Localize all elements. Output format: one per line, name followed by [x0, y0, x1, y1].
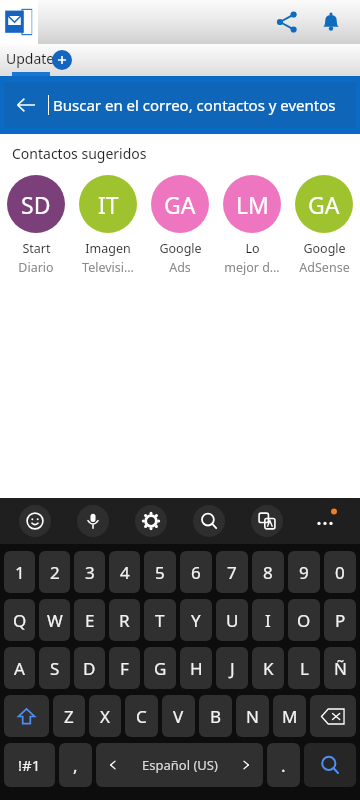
button[interactable]: B	[199, 695, 232, 737]
button[interactable]: Voice input	[64, 498, 122, 544]
button[interactable]: R	[109, 599, 140, 641]
button[interactable]: New	[52, 50, 72, 70]
button[interactable]: IT	[72, 175, 144, 276]
button[interactable]: N	[236, 695, 269, 737]
button[interactable]: O	[288, 599, 320, 641]
staticText: 6	[191, 561, 201, 584]
staticText: Google	[303, 240, 346, 257]
button[interactable]: GA	[288, 175, 360, 276]
staticText: E	[85, 609, 95, 632]
button[interactable]: Backspace	[310, 695, 356, 737]
button[interactable]: Emoji	[6, 498, 64, 544]
button[interactable]: K	[252, 647, 284, 689]
staticText: J	[230, 657, 235, 680]
button[interactable]: Share	[268, 3, 306, 41]
button[interactable]: 7	[216, 551, 248, 593]
staticText: Y	[191, 609, 201, 632]
button[interactable]: Outlook	[0, 0, 38, 44]
button[interactable]: V	[162, 695, 195, 737]
staticText: 8	[263, 561, 273, 584]
button[interactable]: W	[39, 599, 70, 641]
button[interactable]: Notifications	[312, 3, 350, 41]
staticText: SD	[21, 189, 51, 220]
button[interactable]: 1	[4, 551, 35, 593]
button[interactable]: M	[273, 695, 306, 737]
staticText: A	[14, 657, 25, 680]
staticText: V	[173, 705, 184, 728]
button[interactable]: SD	[0, 175, 72, 276]
staticText: C	[136, 705, 147, 728]
staticText: Televisi…	[82, 259, 134, 276]
button[interactable]: Search	[304, 743, 356, 787]
button[interactable]: Back	[4, 83, 48, 127]
staticText: 1	[15, 561, 25, 584]
staticText: L	[300, 657, 309, 680]
staticText: G	[154, 657, 167, 680]
staticText: 3	[85, 561, 95, 584]
staticText: K	[263, 657, 274, 680]
button[interactable]: 6	[180, 551, 212, 593]
button[interactable]: Español (US)	[96, 743, 263, 787]
staticText: R	[119, 609, 130, 632]
staticText: M	[282, 705, 298, 728]
button[interactable]: 9	[288, 551, 320, 593]
button[interactable]: I	[252, 599, 284, 641]
button[interactable]: Back	[4, 82, 356, 128]
staticText: Q	[13, 609, 27, 632]
staticText: Diario	[18, 259, 54, 276]
button[interactable]: J	[216, 647, 248, 689]
staticText: Update	[6, 49, 55, 68]
button[interactable]: Ñ	[324, 647, 356, 689]
staticText: LM	[236, 189, 269, 220]
staticText: .	[281, 754, 286, 777]
button[interactable]: Q	[4, 599, 35, 641]
staticText: F	[120, 657, 129, 680]
button[interactable]: T	[144, 599, 176, 641]
button[interactable]: F	[109, 647, 140, 689]
button[interactable]: 8	[252, 551, 284, 593]
staticText: O	[297, 609, 311, 632]
button[interactable]: P	[324, 599, 356, 641]
button[interactable]: E	[74, 599, 105, 641]
button[interactable]: G	[144, 647, 176, 689]
staticText: 0	[335, 561, 345, 584]
button[interactable]: 2	[39, 551, 70, 593]
button[interactable]: 3	[74, 551, 105, 593]
staticText: N	[246, 705, 259, 728]
button[interactable]: 0	[324, 551, 356, 593]
staticText: Ñ	[334, 657, 347, 680]
button[interactable]: ,	[59, 743, 92, 787]
button[interactable]: U	[216, 599, 248, 641]
button[interactable]: L	[288, 647, 320, 689]
staticText: mejor d…	[224, 259, 280, 276]
button[interactable]: GA	[144, 175, 216, 276]
button[interactable]: Y	[180, 599, 212, 641]
staticText: IT	[98, 189, 119, 220]
button[interactable]: Shift	[4, 695, 49, 737]
button[interactable]: C	[125, 695, 158, 737]
staticText: !#1	[18, 755, 41, 775]
staticText: Google	[159, 240, 202, 257]
button[interactable]: Settings	[122, 498, 180, 544]
staticText: GA	[164, 189, 196, 220]
button[interactable]: A	[4, 647, 35, 689]
button[interactable]: Search	[180, 498, 238, 544]
button[interactable]: 5	[144, 551, 176, 593]
button[interactable]: Z	[53, 695, 85, 737]
button[interactable]: !#1	[4, 743, 55, 787]
button[interactable]: Update	[0, 44, 61, 76]
button[interactable]: LM	[216, 175, 288, 276]
button[interactable]: S	[39, 647, 70, 689]
button[interactable]: X	[89, 695, 121, 737]
button[interactable]: H	[180, 647, 212, 689]
button[interactable]: More options	[296, 498, 354, 544]
staticText: Imagen	[85, 240, 131, 257]
button[interactable]: D	[74, 647, 105, 689]
staticText: 9	[299, 561, 309, 584]
button[interactable]: 4	[109, 551, 140, 593]
staticText: B	[210, 705, 222, 728]
staticText: 4	[120, 561, 130, 584]
button[interactable]: Translate	[238, 498, 296, 544]
button[interactable]: .	[267, 743, 300, 787]
staticText: P	[335, 609, 346, 632]
